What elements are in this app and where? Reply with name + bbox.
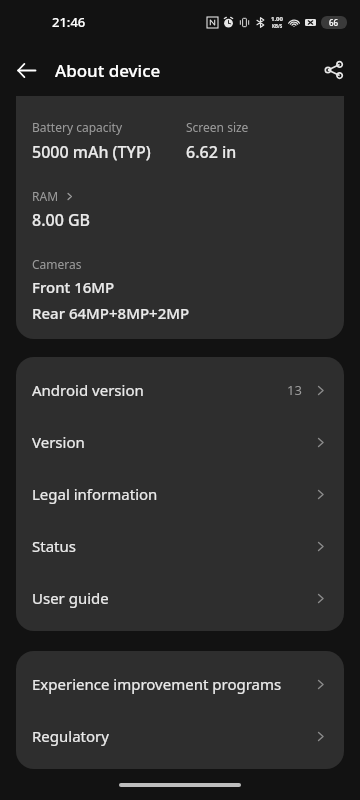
staticText: Regulatory bbox=[32, 726, 109, 746]
button[interactable]: RAM bbox=[32, 188, 75, 204]
staticText: 66 bbox=[329, 17, 339, 28]
button[interactable]: Regulatory bbox=[16, 710, 344, 762]
staticText: 21:46 bbox=[52, 13, 86, 31]
staticText: Screen size bbox=[186, 119, 249, 135]
staticText: Version bbox=[32, 432, 85, 452]
staticText: Android version bbox=[32, 380, 144, 400]
staticText: Battery capacity bbox=[32, 119, 123, 135]
button[interactable]: Back bbox=[0, 44, 52, 96]
staticText: RAM bbox=[32, 188, 59, 204]
staticText: 6.62 in bbox=[186, 141, 237, 163]
button[interactable]: Version bbox=[16, 416, 344, 468]
button[interactable]: Android version bbox=[16, 364, 344, 416]
staticText: Front 16MP bbox=[32, 277, 115, 297]
staticText: User guide bbox=[32, 588, 109, 608]
staticText: Legal information bbox=[32, 484, 158, 504]
button[interactable]: User guide bbox=[16, 572, 344, 624]
staticText: 13 bbox=[287, 381, 302, 399]
staticText: Cameras bbox=[32, 256, 82, 272]
staticText: 5000 mAh (TYP) bbox=[32, 141, 151, 163]
staticText: Experience improvement programs bbox=[32, 674, 282, 694]
button[interactable]: Legal information bbox=[16, 468, 344, 520]
staticText: 1.00 bbox=[271, 15, 283, 23]
staticText: About device bbox=[55, 59, 161, 82]
staticText: KB/S bbox=[272, 23, 283, 29]
button[interactable]: Share bbox=[308, 44, 360, 96]
staticText: Rear 64MP+8MP+2MP bbox=[32, 303, 190, 323]
staticText: Status bbox=[32, 536, 76, 556]
staticText: 8.00 GB bbox=[32, 209, 91, 231]
button[interactable]: Experience improvement programs bbox=[16, 658, 344, 710]
button[interactable]: Status bbox=[16, 520, 344, 572]
